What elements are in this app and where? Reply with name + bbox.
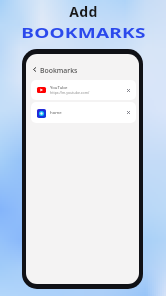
staticText: Bookmarks xyxy=(40,66,78,75)
button[interactable]: Remove bookmark xyxy=(124,86,133,95)
staticText: https://m.youtube.com/ xyxy=(50,90,90,95)
button[interactable]: YouTube xyxy=(31,80,136,100)
staticText: home xyxy=(50,109,62,115)
button[interactable]: Remove bookmark xyxy=(124,108,133,117)
staticText: Add xyxy=(69,2,98,21)
staticText: BOOKMARKS xyxy=(21,22,146,42)
button[interactable]: home xyxy=(31,102,136,123)
button[interactable]: Back xyxy=(29,64,40,75)
staticText: YouTube xyxy=(50,84,68,90)
